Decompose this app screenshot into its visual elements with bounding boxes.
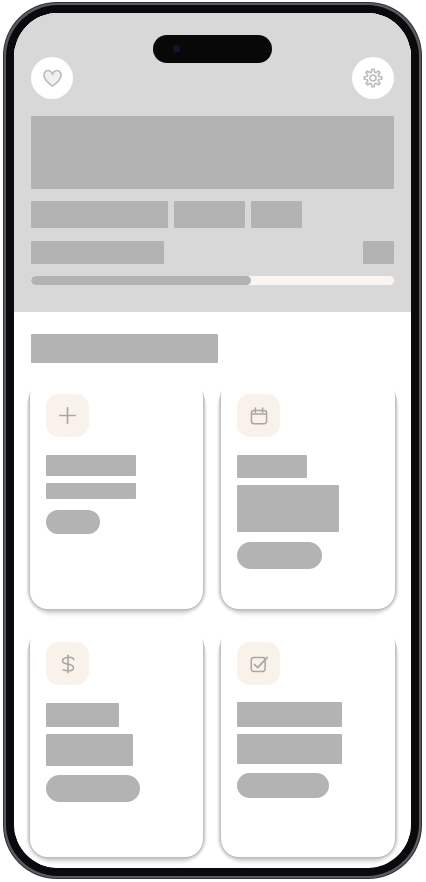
button[interactable]: Add new: [30, 378, 203, 609]
button[interactable]: Calendar: [221, 378, 395, 609]
button[interactable]: Payments: [30, 626, 203, 857]
button[interactable]: Settings: [352, 57, 394, 99]
button[interactable]: Favorite: [31, 57, 73, 99]
button[interactable]: Tasks: [221, 626, 395, 857]
